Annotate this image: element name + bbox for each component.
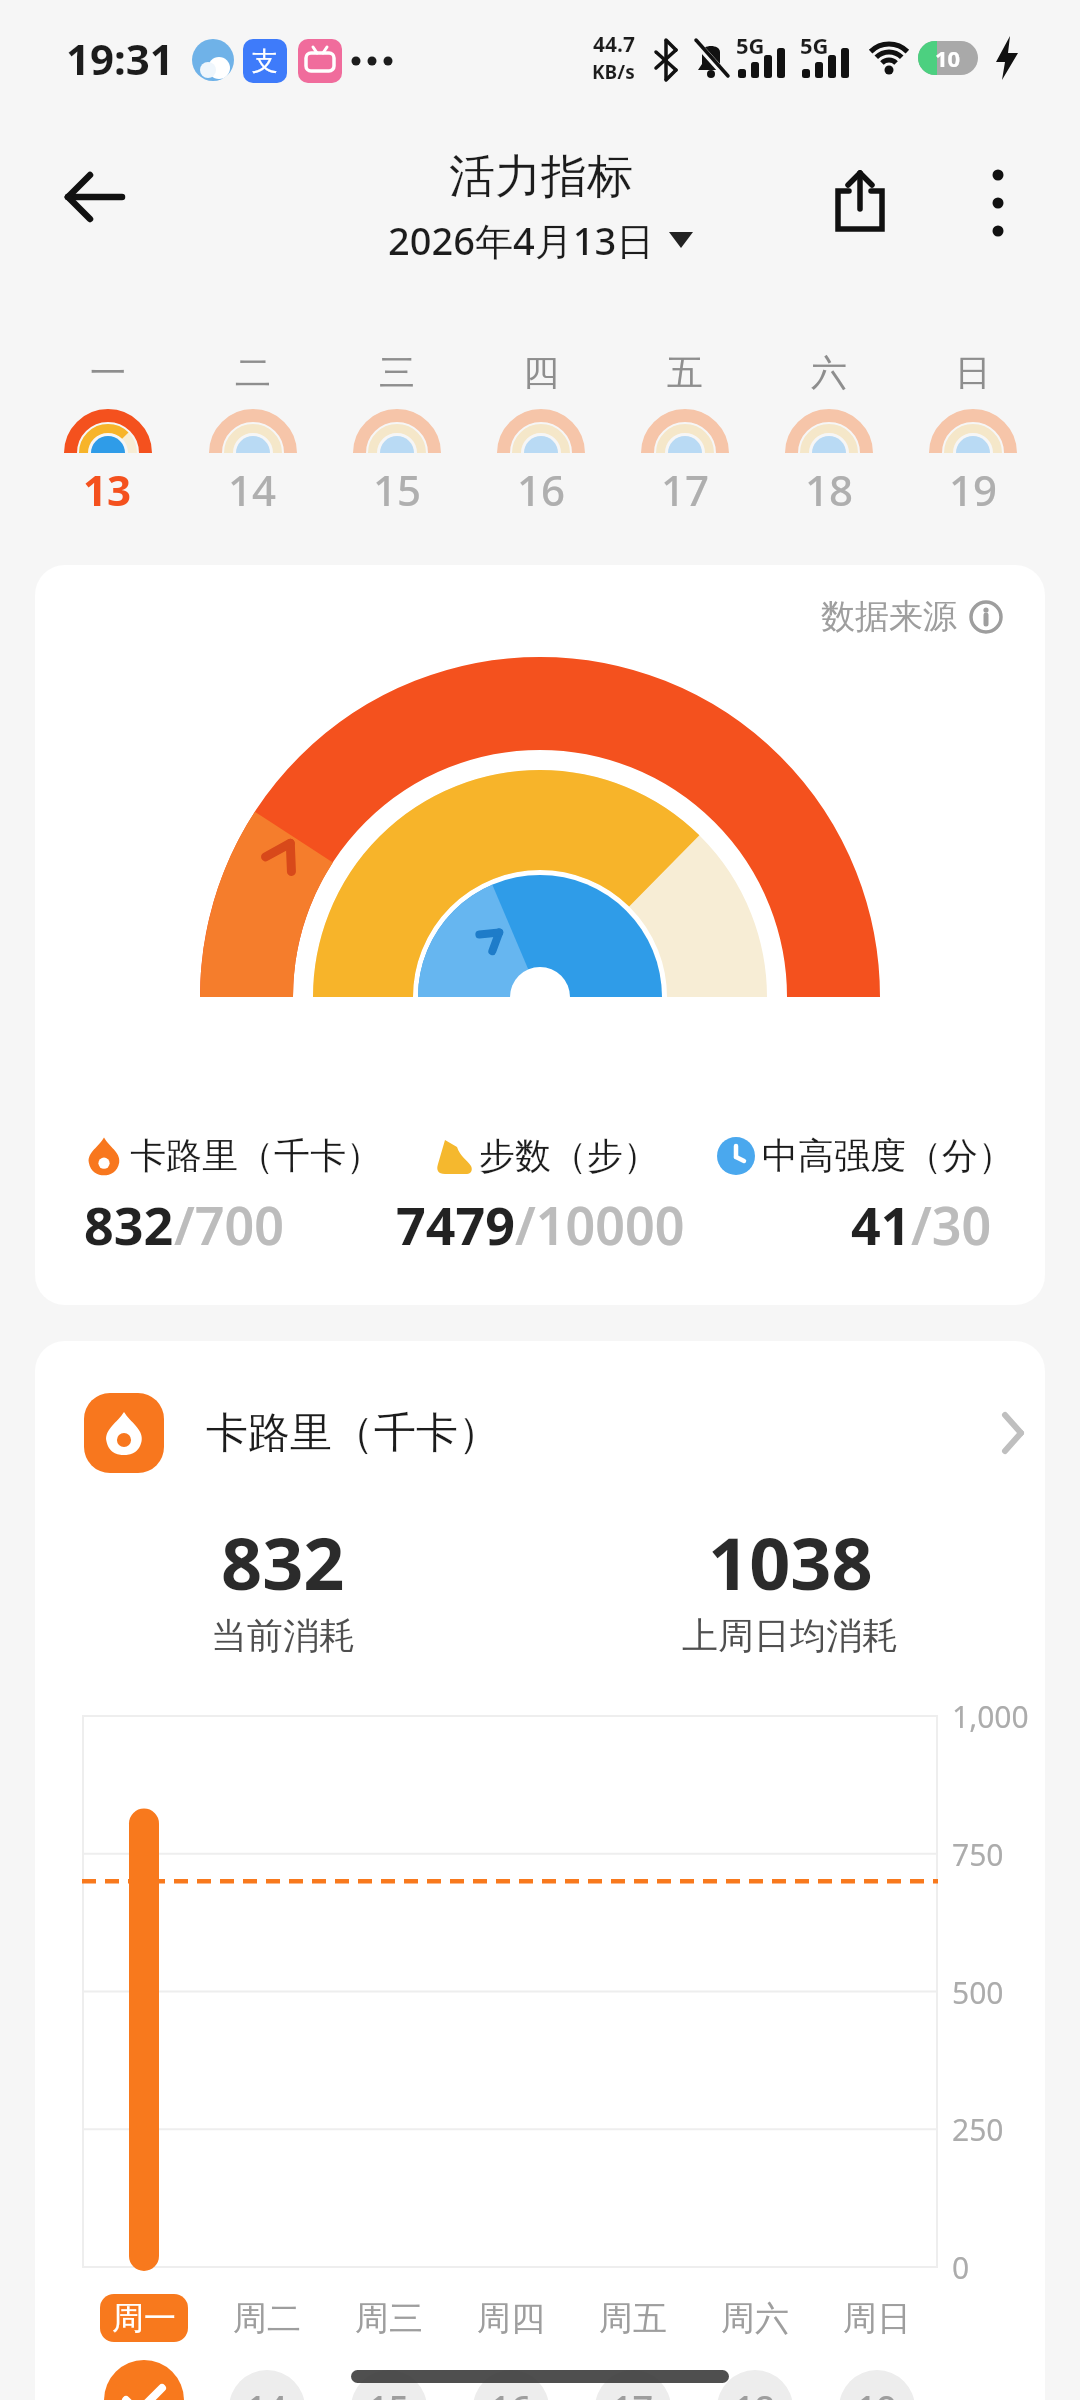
staticText: /10000 bbox=[515, 1189, 685, 1260]
button[interactable]: 六 bbox=[757, 350, 901, 518]
button[interactable] bbox=[50, 155, 140, 239]
button[interactable]: 周二 bbox=[207, 2294, 327, 2342]
staticText: 14 bbox=[246, 2384, 288, 2400]
staticText: 14 bbox=[228, 461, 277, 518]
staticText: 步数（步） bbox=[479, 1133, 659, 1178]
staticText: 750 bbox=[952, 1834, 1004, 1875]
staticText: 15 bbox=[368, 2384, 410, 2400]
staticText: 周日 bbox=[843, 2297, 911, 2340]
staticText: 250 bbox=[952, 2109, 1004, 2150]
button[interactable]: 数据来源 bbox=[821, 595, 1003, 638]
staticText: 1,000 bbox=[952, 1696, 1029, 1737]
staticText: 500 bbox=[952, 1972, 1004, 2013]
staticText: 四 bbox=[523, 350, 559, 395]
button[interactable]: 三 bbox=[325, 350, 469, 518]
button[interactable]: 周日 bbox=[817, 2294, 937, 2342]
staticText: 卡路里（千卡） bbox=[130, 1133, 382, 1178]
button[interactable]: 周六 bbox=[695, 2294, 815, 2342]
staticText: 17 bbox=[612, 2384, 654, 2400]
staticText: 五 bbox=[667, 350, 703, 395]
button[interactable]: 周三 bbox=[329, 2294, 449, 2342]
staticText: 15 bbox=[373, 461, 422, 518]
staticText: 13 bbox=[83, 461, 132, 518]
staticText: 16 bbox=[517, 461, 566, 518]
staticText: 7479 bbox=[396, 1189, 515, 1260]
button[interactable]: 周四 bbox=[451, 2294, 571, 2342]
button[interactable]: 一 bbox=[35, 350, 180, 518]
staticText: 5G bbox=[800, 30, 829, 60]
staticText: KB/s bbox=[592, 59, 635, 85]
staticText: 16 bbox=[490, 2384, 532, 2400]
staticText: /700 bbox=[174, 1189, 284, 1260]
button[interactable]: 周五 bbox=[573, 2294, 693, 2342]
staticText: 18 bbox=[805, 461, 854, 518]
staticText: /30 bbox=[911, 1189, 992, 1260]
staticText: 周一 bbox=[112, 2298, 176, 2338]
staticText: 日 bbox=[955, 350, 991, 395]
staticText: 周二 bbox=[233, 2297, 301, 2340]
staticText: 18 bbox=[734, 2384, 776, 2400]
staticText: 41 bbox=[851, 1189, 911, 1260]
button[interactable] bbox=[960, 160, 1036, 246]
staticText: 19:31 bbox=[66, 30, 174, 87]
staticText: 19 bbox=[856, 2384, 898, 2400]
button[interactable]: 二 bbox=[180, 350, 325, 518]
staticText: 17 bbox=[661, 461, 710, 518]
button[interactable]: 日 bbox=[901, 350, 1045, 518]
staticText: 10 bbox=[935, 43, 961, 73]
staticText: 二 bbox=[235, 350, 271, 395]
staticText: 中高强度（分） bbox=[762, 1133, 1014, 1178]
staticText: 周四 bbox=[477, 2297, 545, 2340]
staticText: 44.7 bbox=[593, 30, 635, 59]
staticText: 卡路里（千卡） bbox=[206, 1407, 500, 1460]
staticText: 六 bbox=[811, 350, 847, 395]
staticText: 2026年4月13日 bbox=[388, 214, 655, 266]
staticText: 832 bbox=[221, 1513, 345, 1611]
button[interactable]: 四 bbox=[469, 350, 613, 518]
staticText: 周五 bbox=[599, 2297, 667, 2340]
staticText: 5G bbox=[736, 30, 765, 60]
staticText: 周三 bbox=[355, 2297, 423, 2340]
button[interactable] bbox=[820, 160, 900, 246]
button[interactable]: 周一 bbox=[100, 2294, 188, 2342]
button[interactable]: 五 bbox=[613, 350, 757, 518]
button[interactable]: 2026年4月13日 bbox=[388, 214, 693, 266]
staticText: 当前消耗 bbox=[211, 1613, 355, 1658]
staticText: 周六 bbox=[721, 2297, 789, 2340]
staticText: 上周日均消耗 bbox=[682, 1613, 898, 1658]
staticText: 活力指标 bbox=[449, 148, 633, 206]
staticText: 0 bbox=[952, 2247, 970, 2288]
staticText: 19 bbox=[949, 461, 998, 518]
staticText: 支 bbox=[252, 45, 278, 78]
staticText: 一 bbox=[90, 350, 126, 395]
staticText: 数据来源 bbox=[821, 595, 957, 638]
staticText: 832 bbox=[84, 1189, 174, 1260]
staticText: 三 bbox=[379, 350, 415, 395]
button[interactable]: 卡路里（千卡） bbox=[84, 1393, 1024, 1473]
staticText: 1038 bbox=[708, 1513, 873, 1611]
